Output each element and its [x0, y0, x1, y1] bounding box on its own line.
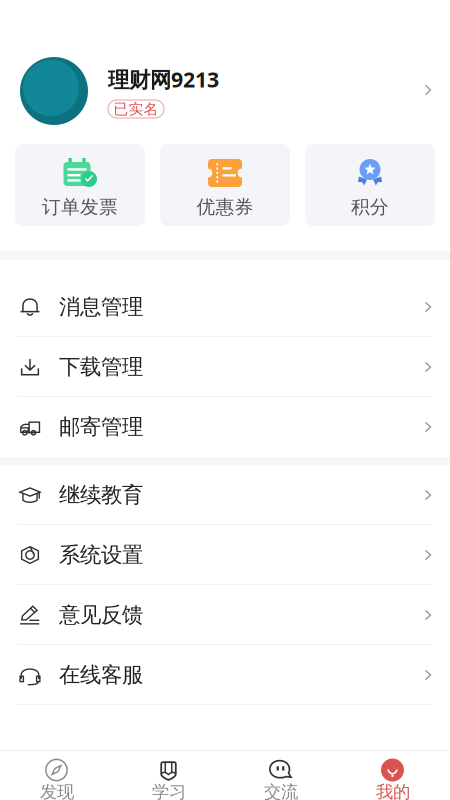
staticText: 下载管理: [59, 354, 143, 380]
staticText: 继续教育: [59, 482, 143, 508]
staticText: 在线客服: [59, 662, 143, 688]
button[interactable]: 下载管理: [0, 337, 450, 397]
button[interactable]: 我的: [337, 751, 449, 800]
staticText: 积分: [351, 195, 389, 218]
button[interactable]: 订单发票: [15, 144, 145, 226]
staticText: 理财网9213: [108, 65, 219, 93]
button[interactable]: 邮寄管理: [0, 397, 450, 457]
button[interactable]: 学习: [113, 751, 225, 800]
staticText: 交流: [264, 781, 298, 800]
staticText: 学习: [152, 781, 186, 800]
button[interactable]: 理财网9213: [0, 0, 450, 128]
staticText: 发现: [40, 781, 74, 800]
button[interactable]: 继续教育: [0, 465, 450, 525]
button[interactable]: 积分: [305, 144, 435, 226]
button[interactable]: 在线客服: [0, 645, 450, 705]
staticText: 我的: [376, 781, 410, 800]
staticText: 已实名: [113, 100, 158, 118]
staticText: 系统设置: [59, 542, 143, 568]
staticText: 订单发票: [42, 195, 118, 218]
button[interactable]: 系统设置: [0, 525, 450, 585]
staticText: 优惠券: [196, 195, 253, 218]
button[interactable]: 发现: [1, 751, 113, 800]
staticText: 消息管理: [59, 294, 143, 320]
staticText: 邮寄管理: [59, 414, 143, 440]
button[interactable]: 意见反馈: [0, 585, 450, 645]
button[interactable]: 交流: [225, 751, 337, 800]
button[interactable]: 优惠券: [160, 144, 290, 226]
button[interactable]: 消息管理: [0, 277, 450, 337]
staticText: 意见反馈: [59, 602, 143, 628]
